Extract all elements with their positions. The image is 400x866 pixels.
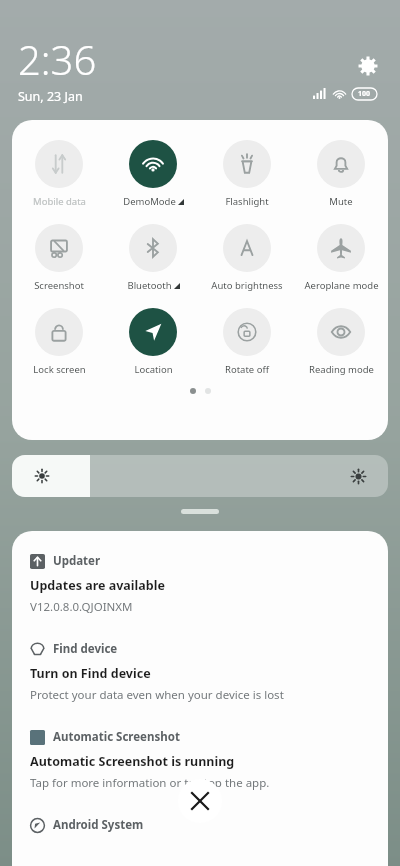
button[interactable]: Location (106, 306, 200, 378)
button[interactable]: Updater (30, 553, 370, 615)
staticText: Reading mode (309, 363, 374, 376)
button[interactable] (12, 455, 388, 497)
staticText: Automatic Screenshot (53, 729, 180, 745)
staticText: Turn on Find device (30, 665, 151, 682)
staticText: Sun, 23 Jan (18, 88, 83, 105)
staticText: Android System (53, 817, 144, 833)
button[interactable]: Mobile data (12, 138, 106, 210)
button[interactable]: Auto brightness (200, 222, 294, 294)
staticText: 2:36 (18, 32, 97, 86)
staticText: V12.0.8.0.QJOINXM (30, 599, 133, 615)
staticText: Aeroplane mode (304, 279, 379, 292)
button[interactable]: Aeroplane mode (294, 222, 388, 294)
staticText: Screenshot (34, 279, 84, 292)
staticText: 100 (358, 89, 371, 99)
staticText: Auto brightness (211, 279, 283, 292)
button[interactable]: Reading mode (294, 306, 388, 378)
button[interactable]: Flashlight (200, 138, 294, 210)
staticText: Mobile data (33, 195, 86, 208)
staticText: Bluetooth (127, 279, 172, 292)
button[interactable]: DemoMode (106, 138, 200, 210)
staticText: Location (134, 363, 173, 376)
staticText: DemoMode (123, 195, 176, 208)
staticText: Lock screen (33, 363, 86, 376)
button[interactable]: Find device (30, 641, 370, 703)
button[interactable]: Mute (294, 138, 388, 210)
button[interactable]: Screenshot (12, 222, 106, 294)
button[interactable]: Android System (30, 817, 144, 833)
staticText: Automatic Screenshot is running (30, 753, 235, 770)
button[interactable]: Bluetooth (106, 222, 200, 294)
staticText: Rotate off (225, 363, 269, 376)
staticText: Protect your data even when your device … (30, 687, 284, 703)
button[interactable]: Close (178, 779, 222, 823)
staticText: Flashlight (225, 195, 269, 208)
staticText: Updater (53, 553, 101, 569)
staticText: Updates are available (30, 577, 165, 594)
button[interactable]: Lock screen (12, 306, 106, 378)
staticText: Mute (329, 195, 353, 208)
button[interactable]: Settings (352, 50, 384, 82)
button[interactable]: Rotate off (200, 306, 294, 378)
staticText: Find device (53, 641, 118, 657)
button[interactable]: Automatic Screenshot (30, 729, 370, 791)
staticText: Tap for more information or to stop the … (30, 775, 270, 791)
